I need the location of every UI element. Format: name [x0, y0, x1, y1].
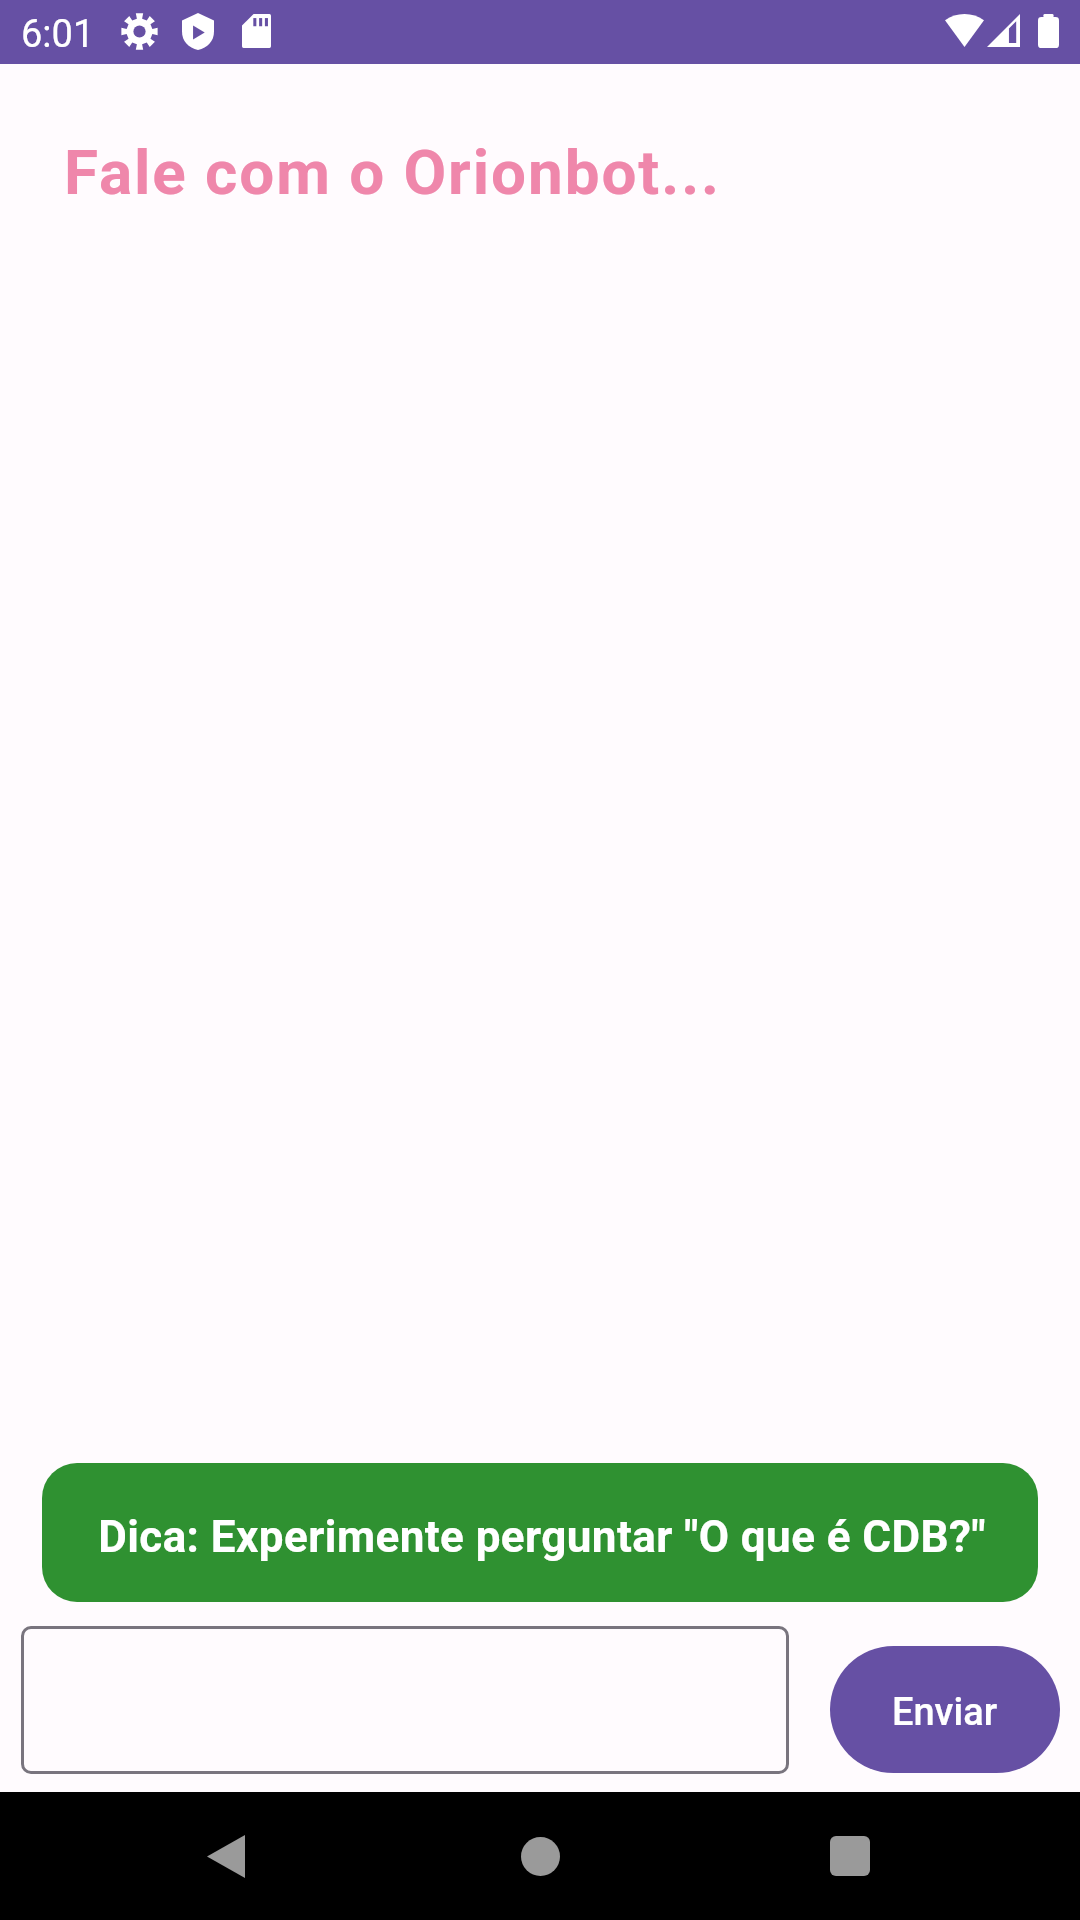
button[interactable]: Dica: Experimente perguntar "O que é CDB… — [42, 1463, 1038, 1602]
staticText: Fale com o Orionbot... — [64, 136, 721, 209]
button[interactable]: Enviar — [830, 1646, 1060, 1773]
staticText: Enviar — [892, 1690, 998, 1735]
staticText: Dica: Experimente perguntar "O que é CDB… — [98, 1511, 986, 1563]
button[interactable]: Recent apps — [760, 1792, 940, 1920]
button[interactable]: Digite sua mensagem — [21, 1626, 789, 1774]
button[interactable]: Home — [450, 1792, 630, 1920]
staticText: 6:01 — [21, 12, 95, 57]
button[interactable]: Back — [136, 1792, 316, 1920]
